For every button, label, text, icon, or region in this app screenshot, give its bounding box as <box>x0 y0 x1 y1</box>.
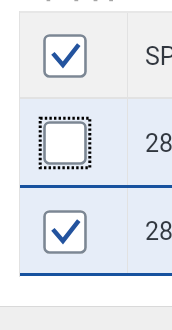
button[interactable]: Row selected, checkbox checked <box>38 29 92 83</box>
button[interactable]: Select row, checkbox unchecked <box>38 116 92 170</box>
staticText: SPRING <box>145 42 172 71</box>
staticText: 28 <box>145 217 172 246</box>
button[interactable]: Select row, checkbox unchecked <box>20 99 172 185</box>
button[interactable]: Row selected, checkbox checked <box>20 13 172 97</box>
staticText: 28 <box>145 129 172 158</box>
button[interactable]: Row selected, checkbox checked <box>38 205 92 259</box>
button[interactable]: Row selected, checkbox checked <box>20 188 172 273</box>
